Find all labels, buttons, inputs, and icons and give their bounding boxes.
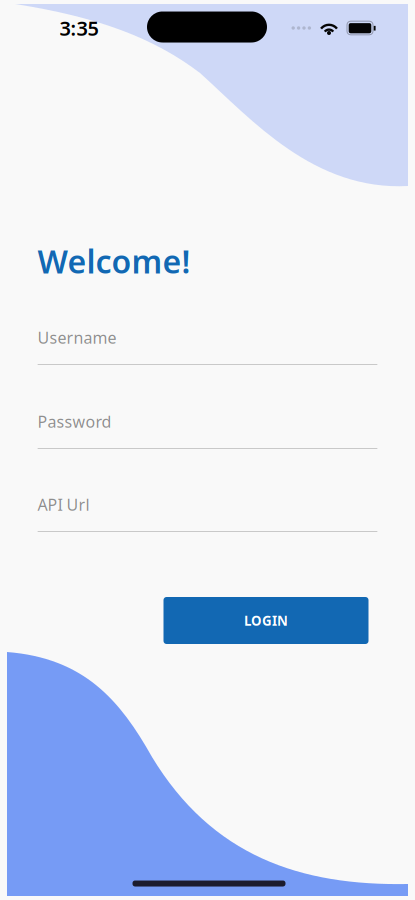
button[interactable]: Password [37, 414, 377, 449]
staticText: Welcome! [37, 240, 190, 282]
button[interactable]: Username [37, 330, 377, 365]
staticText: API Url [37, 494, 89, 515]
staticText: 3:35 [59, 15, 98, 41]
staticText: Username [37, 327, 116, 348]
staticText: Password [37, 411, 111, 432]
button[interactable]: API Url [37, 497, 377, 532]
staticText: LOGIN [244, 612, 288, 629]
button[interactable]: LOGIN [163, 597, 368, 644]
